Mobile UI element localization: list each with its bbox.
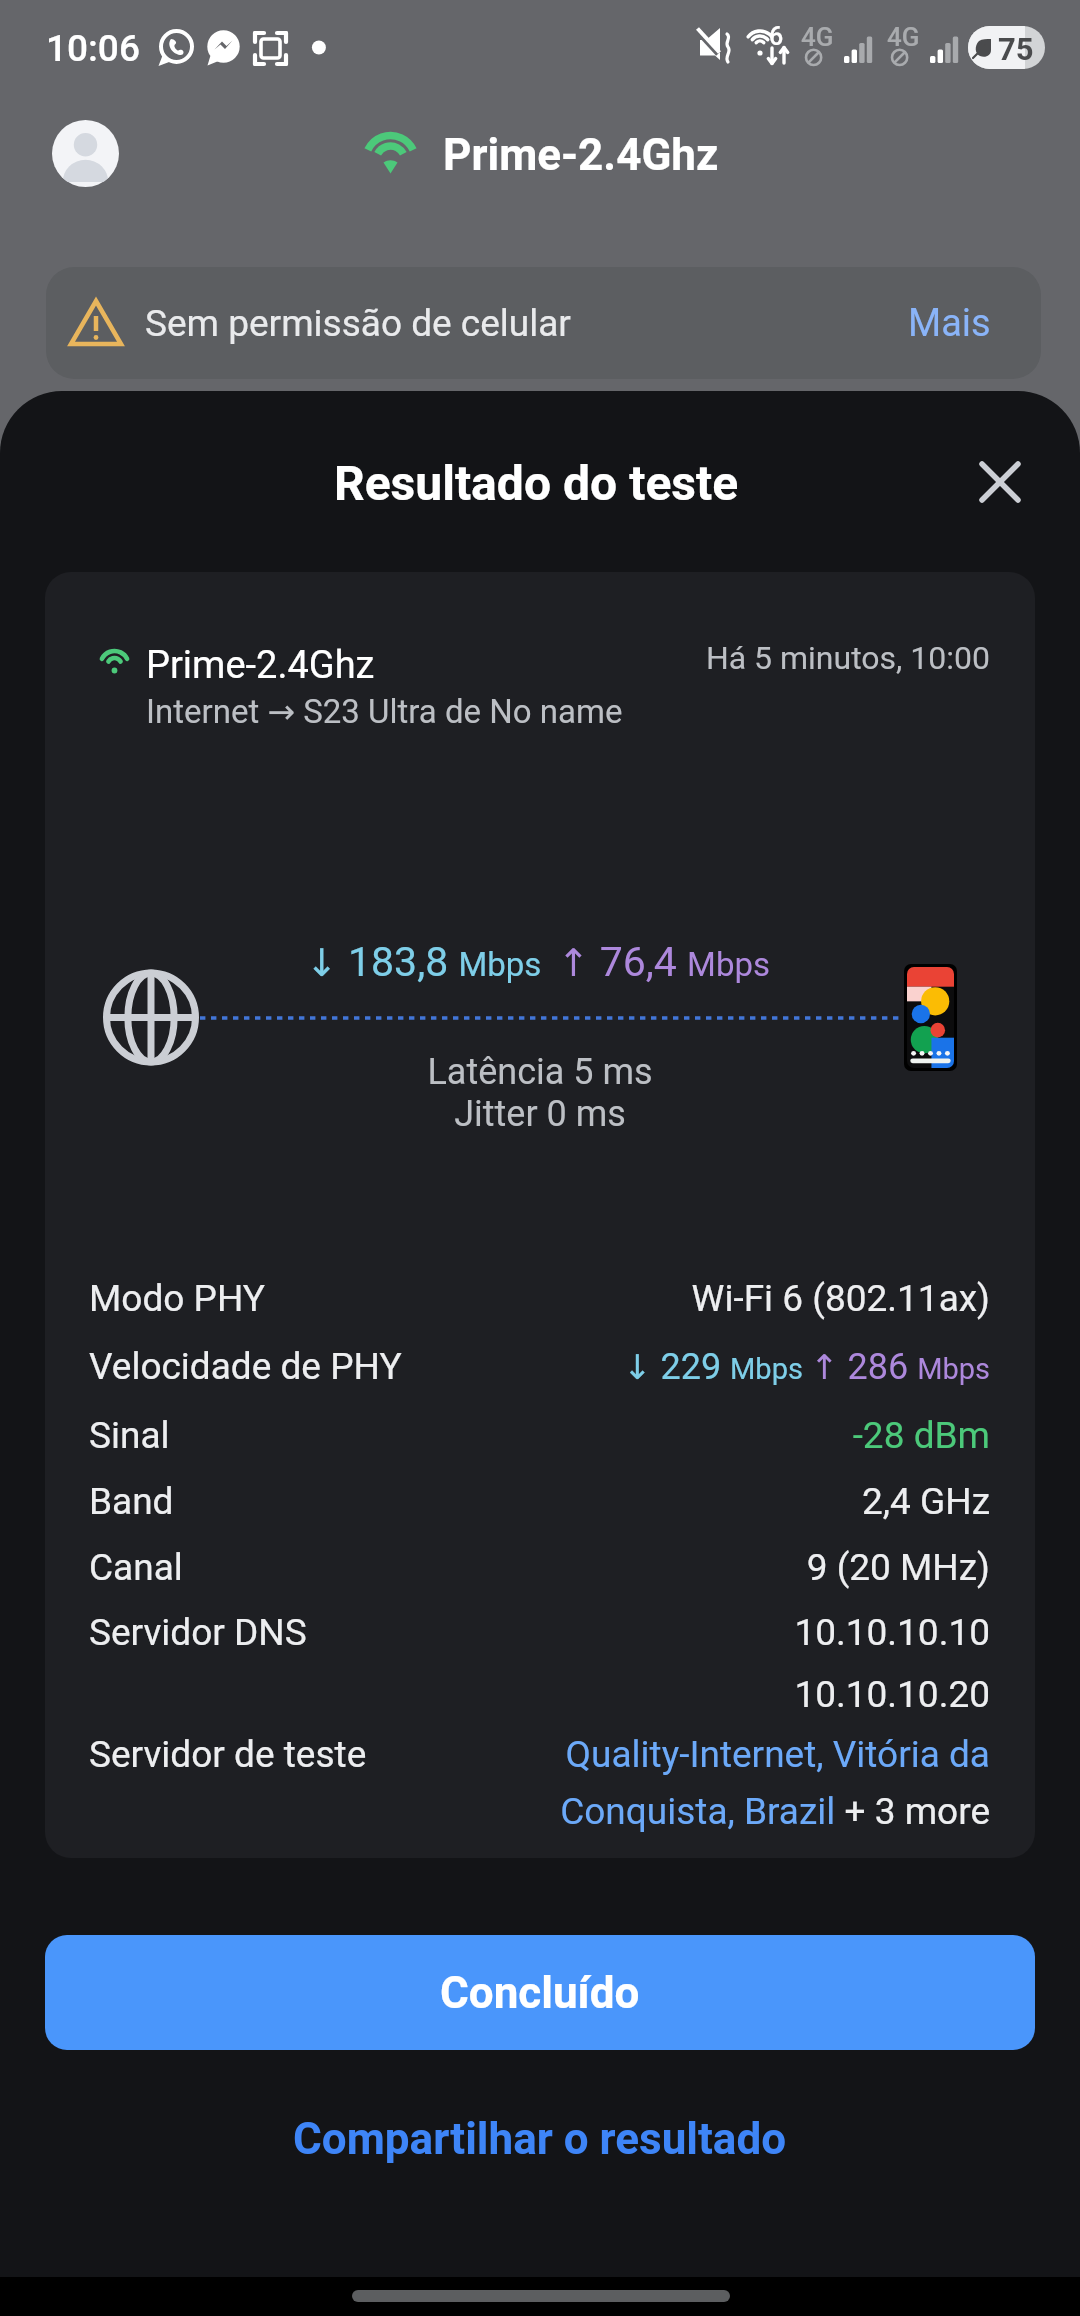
staticText: ↓ 229 Mbps ↑ 286 Mbps	[623, 1346, 990, 1388]
staticText: Há 5 minutos, 10:00	[590, 639, 990, 677]
staticText: 4G	[801, 22, 834, 52]
staticText: Canal	[89, 1546, 183, 1589]
staticText: Servidor DNS	[89, 1611, 307, 1654]
staticText: 6	[769, 22, 784, 51]
staticText: 10:06	[46, 27, 140, 70]
staticText: Resultado do teste	[334, 455, 739, 511]
button[interactable]: Concluído	[45, 1935, 1035, 2050]
staticText: Sinal	[89, 1414, 170, 1457]
button[interactable]: Conta	[52, 120, 119, 187]
staticText: Mais	[908, 301, 991, 346]
button[interactable]: Fechar	[961, 443, 1039, 521]
staticText: Concluído	[440, 1967, 640, 2019]
staticText: Velocidade de PHY	[89, 1345, 402, 1388]
staticText: Servidor de teste	[89, 1733, 367, 1776]
staticText: Prime-2.4Ghz	[146, 643, 375, 688]
staticText: Band	[89, 1480, 174, 1523]
button[interactable]: Compartilhar o resultado	[0, 2081, 1080, 2196]
staticText: ↓ 183,8 Mbps ↑ 76,4 Mbps	[306, 938, 770, 986]
staticText: Modo PHY	[89, 1277, 266, 1320]
staticText: Jitter 0 ms	[454, 1093, 626, 1135]
staticText: Internet → S23 Ultra de No name	[146, 692, 623, 731]
button[interactable]: Quality-Internet, Vitória da Conquista, …	[490, 1733, 990, 1833]
staticText: Latência 5 ms	[427, 1051, 653, 1093]
staticText: 10.10.10.20	[794, 1673, 990, 1716]
staticText: Wi-Fi 6 (802.11ax)	[490, 1277, 990, 1320]
staticText: Prime-2.4Ghz	[443, 129, 719, 181]
staticText: 10.10.10.10	[794, 1611, 990, 1654]
staticText: Compartilhar o resultado	[293, 2113, 787, 2165]
staticText: Quality-Internet, Vitória da Conquista, …	[490, 1733, 990, 1833]
staticText: 75	[998, 31, 1034, 67]
button[interactable]: Sem permissão de celular	[46, 267, 1041, 379]
staticText: 2,4 GHz	[490, 1480, 990, 1523]
staticText: 4G	[887, 22, 920, 52]
staticText: -28 dBm	[490, 1414, 990, 1457]
staticText: Sem permissão de celular	[145, 302, 571, 345]
staticText: 9 (20 MHz)	[490, 1546, 990, 1589]
